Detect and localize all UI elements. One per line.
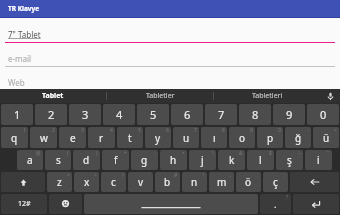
staticText: i (317, 153, 320, 167)
button[interactable]: 9 (273, 104, 305, 125)
button[interactable]: 4 (88, 127, 115, 148)
button[interactable]: / (101, 172, 126, 192)
button[interactable]: ( (45, 150, 71, 170)
staticText: h (170, 153, 177, 167)
button[interactable]: Web (5, 77, 335, 89)
button[interactable]: 8 (239, 104, 271, 125)
staticText: 2 (48, 107, 55, 122)
staticText: g (141, 153, 148, 167)
button[interactable]: - (131, 150, 158, 170)
button[interactable]: 0 (307, 104, 339, 125)
button[interactable]: 7 (173, 127, 199, 148)
staticText: Tablet (42, 91, 64, 101)
staticText: 7" Tablet (8, 29, 41, 40)
staticText: 4 (116, 107, 123, 122)
staticText: , (230, 172, 232, 179)
button[interactable]: - (285, 127, 311, 148)
button[interactable]: 9 (229, 127, 255, 148)
staticText: / (122, 172, 124, 179)
button[interactable]: Emoji (49, 194, 82, 214)
button[interactable]: Space (84, 194, 258, 214)
staticText: 12# (18, 199, 31, 209)
button[interactable]: = (313, 127, 339, 148)
button[interactable]: 5 (117, 127, 143, 148)
button[interactable]: ' (128, 172, 153, 192)
button[interactable]: < (47, 172, 72, 192)
staticText: y (155, 131, 161, 145)
button[interactable]: 0 (257, 127, 283, 148)
button[interactable]: ! (182, 172, 207, 192)
button[interactable]: 7 (205, 104, 237, 125)
button[interactable]: Tablet (0, 89, 106, 103)
button[interactable]: & (218, 150, 245, 170)
button[interactable]: Tabletler (107, 89, 213, 103)
staticText: ç (273, 175, 278, 189)
button[interactable]: 7" Tablet (5, 29, 335, 43)
button[interactable]: Enter (293, 194, 339, 214)
button[interactable]: 3 (59, 127, 86, 148)
button[interactable]: 2 (35, 104, 67, 125)
button[interactable]: 1 (1, 127, 28, 148)
staticText: 5 (150, 107, 157, 122)
staticText: r (99, 131, 104, 145)
button[interactable]: ? (260, 194, 291, 214)
staticText: 6 (166, 127, 169, 134)
staticText: \ (212, 150, 214, 157)
button[interactable]: Backspace (290, 172, 339, 192)
button[interactable]: 4 (103, 104, 135, 125)
button[interactable]: 6 (171, 104, 203, 125)
button[interactable]: ~ (276, 150, 303, 170)
button[interactable]: 2 (30, 127, 57, 148)
button[interactable]: , (209, 172, 234, 192)
staticText: ? (286, 194, 289, 201)
staticText: 1 (14, 107, 21, 122)
staticText: 9 (286, 107, 293, 122)
staticText: 8 (222, 127, 225, 134)
button[interactable]: # (155, 172, 180, 192)
staticText: . (274, 198, 277, 210)
button[interactable]: Voice input (320, 89, 340, 103)
staticText: d (83, 153, 90, 167)
button[interactable]: 5 (137, 104, 169, 125)
staticText: w (40, 131, 48, 145)
staticText: $ (269, 150, 272, 157)
staticText: 6 (184, 107, 191, 122)
staticText: + (182, 150, 185, 157)
staticText: ğ (295, 131, 302, 145)
button[interactable]: \ (189, 150, 216, 170)
button[interactable]: 3 (69, 104, 101, 125)
staticText: b (164, 175, 171, 189)
button[interactable]: ) (73, 150, 100, 170)
button[interactable]: 1 (1, 104, 33, 125)
button[interactable]: : (263, 172, 288, 192)
staticText: ~ (298, 150, 301, 157)
staticText: t (128, 131, 132, 145)
button[interactable]: " (305, 150, 332, 170)
button[interactable]: @ (17, 150, 43, 170)
button[interactable]: Shift (1, 172, 45, 192)
staticText: Tabletler (146, 91, 175, 101)
button[interactable]: > (74, 172, 99, 192)
staticText: = (334, 127, 337, 134)
staticText: f (114, 153, 118, 167)
staticText: ' (149, 172, 151, 179)
button[interactable]: 12# (1, 194, 47, 214)
button[interactable]: $ (247, 150, 274, 170)
staticText: : (284, 172, 286, 179)
staticText: 1 (23, 127, 26, 134)
staticText: Tabletleri (252, 91, 283, 101)
staticText: j (201, 153, 204, 167)
button[interactable]: e-mail (5, 53, 335, 67)
staticText: 7 (194, 127, 197, 134)
staticText: @ (36, 150, 41, 157)
staticText: 4 (110, 127, 113, 134)
staticText: 3 (82, 107, 89, 122)
staticText: x (84, 175, 90, 189)
button[interactable]: + (160, 150, 187, 170)
button[interactable]: Tabletleri (214, 89, 320, 103)
button[interactable]: 8 (201, 127, 227, 148)
staticText: & (239, 150, 243, 157)
button[interactable]: 6 (145, 127, 171, 148)
button[interactable]: . (236, 172, 261, 192)
button[interactable]: * (102, 150, 129, 170)
